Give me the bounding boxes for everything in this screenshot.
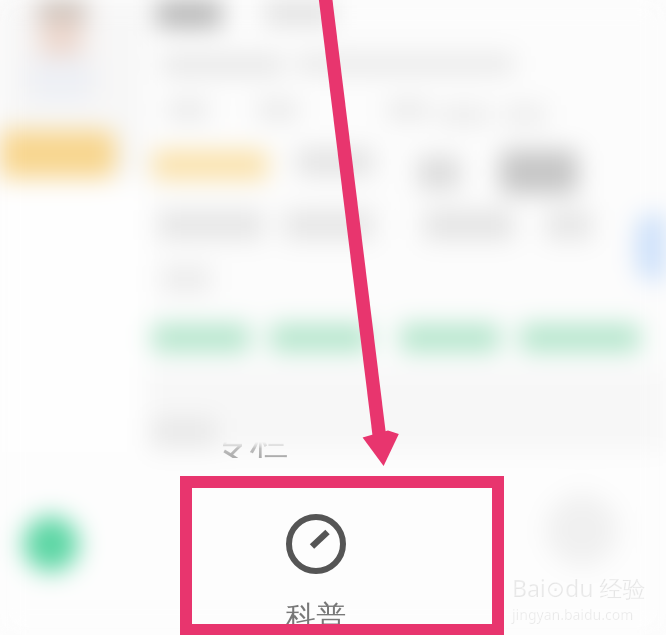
button[interactable]: 科普 xyxy=(236,494,396,635)
staticText: Bai⊙du 经验 xyxy=(511,571,645,602)
staticText: jingyan.baidu.com xyxy=(511,604,633,623)
staticText: 专栏 xyxy=(212,418,288,458)
button[interactable]: 我的 xyxy=(506,482,666,635)
staticText: jingyan.baidu.com xyxy=(512,605,634,624)
staticText: 科普 xyxy=(286,598,346,635)
button[interactable]: 首页 xyxy=(0,482,160,635)
other: 科普 xyxy=(286,514,346,574)
staticText: Bai⊙du 经验 xyxy=(512,572,646,603)
